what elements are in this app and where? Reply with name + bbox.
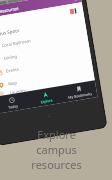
button[interactable]: Explore xyxy=(28,87,64,108)
staticText: Explore xyxy=(37,127,76,142)
button[interactable]: Events xyxy=(0,51,92,80)
staticText: Campus Resources xyxy=(0,6,19,17)
button[interactable]: Campus Resources xyxy=(0,0,82,19)
staticText: resources xyxy=(31,157,82,172)
button[interactable]: My Bookmarks xyxy=(61,81,98,103)
button[interactable]: More options xyxy=(71,0,78,2)
button[interactable]: Coral Ballroom xyxy=(0,25,88,55)
staticText: Campus Spots xyxy=(0,27,20,38)
staticText: Events xyxy=(6,67,19,75)
button[interactable]: Today xyxy=(0,92,31,114)
staticText: Explore xyxy=(40,97,53,104)
staticText: Map xyxy=(8,80,18,87)
staticText: Dining xyxy=(3,54,17,62)
staticText: Coral Ballroom xyxy=(1,38,32,49)
staticText: My Bookmarks xyxy=(68,91,92,100)
staticText: Laundry xyxy=(9,88,27,94)
button[interactable]: Dining xyxy=(0,38,90,67)
button[interactable]: Map xyxy=(0,63,94,93)
button[interactable]: Laundry xyxy=(0,76,95,97)
staticText: campus xyxy=(36,142,77,157)
staticText: Today xyxy=(8,103,18,110)
